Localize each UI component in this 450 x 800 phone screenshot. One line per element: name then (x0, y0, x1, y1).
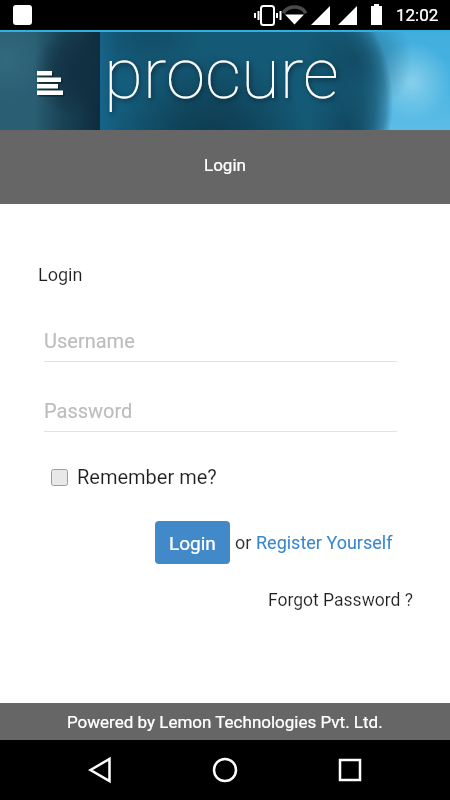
button[interactable]: Open navigation menu (0, 30, 100, 130)
button[interactable]: Login (155, 521, 230, 564)
staticText: 12:02 (396, 5, 439, 25)
button[interactable]: Password (44, 399, 397, 422)
button[interactable]: Recent apps (320, 740, 380, 800)
button[interactable]: Register Yourself (256, 532, 393, 553)
staticText: Login (204, 155, 246, 175)
button[interactable]: Username (44, 329, 397, 352)
staticText: Password (44, 399, 133, 422)
staticText: procure (104, 32, 339, 115)
staticText: Remember me? (77, 465, 217, 488)
button[interactable]: Back (70, 740, 130, 800)
button[interactable]: Forgot Password ? (268, 590, 414, 611)
staticText: Powered by Lemon Technologies Pvt. Ltd. (67, 712, 383, 732)
staticText: or (235, 532, 256, 553)
staticText: Login (38, 264, 83, 285)
button[interactable]: Home (195, 740, 255, 800)
button[interactable]: Remember me? (51, 466, 217, 489)
staticText: Username (44, 329, 135, 352)
staticText: Login (169, 532, 216, 554)
